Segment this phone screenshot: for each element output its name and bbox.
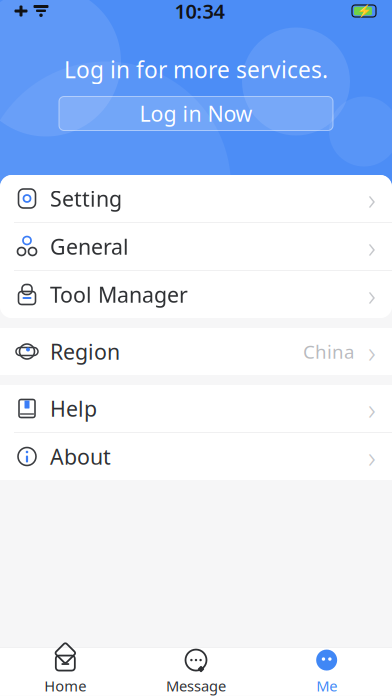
button[interactable]: General [0,223,392,271]
staticText: › [368,275,376,314]
staticText: Log in Now [139,99,252,128]
staticText: About [50,442,111,471]
staticText: Message [166,676,226,696]
staticText: Log in for more services. [64,54,328,84]
button[interactable]: Help [0,385,392,433]
staticText: 10:34 [174,0,224,24]
staticText: Help [50,394,97,423]
button[interactable]: Tool Manager [0,271,392,318]
staticText: › [368,179,376,218]
staticText: › [368,227,376,266]
staticText: › [368,332,376,371]
button[interactable]: Region [0,328,392,375]
staticText: Setting [50,184,122,213]
staticText: ⚡ [356,4,371,18]
staticText: › [368,437,376,476]
staticText: Tool Manager [50,280,188,309]
button[interactable]: Setting [0,175,392,223]
staticText: Home [44,676,86,696]
staticText: China [303,339,354,364]
staticText: General [50,232,129,261]
button[interactable]: Me [261,648,392,696]
button[interactable]: Message [131,648,261,696]
button[interactable]: About [0,433,392,480]
button[interactable]: Log in Now [59,96,333,130]
staticText: › [368,389,376,428]
staticText: Me [316,676,337,696]
button[interactable]: Home [0,648,131,696]
staticText: Region [50,337,120,366]
